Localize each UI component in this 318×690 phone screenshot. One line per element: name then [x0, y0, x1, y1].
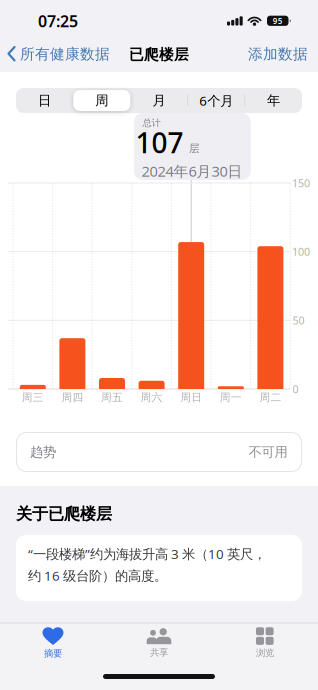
staticText: 约 16 级台阶）的高度。 [28, 567, 167, 584]
staticText: 周二 [259, 391, 281, 404]
button[interactable]: 日 [17, 88, 73, 113]
staticText: 浏览 [256, 647, 274, 659]
staticText: 所有健康数据 [20, 45, 110, 63]
button[interactable]: 年 [245, 88, 301, 113]
staticText: 周四 [61, 391, 83, 404]
button[interactable]: 所有健康数据 [7, 45, 110, 63]
staticText: 周日 [180, 391, 202, 404]
staticText: “一段楼梯”约为海拔升高 3 米（10 英尺， [28, 545, 266, 563]
staticText: 趋势 [30, 444, 56, 460]
staticText: 150 [292, 176, 310, 190]
button[interactable]: 摘要 [8, 622, 98, 664]
staticText: 100 [292, 245, 310, 259]
staticText: 95 [273, 16, 283, 26]
staticText: 0 [292, 382, 298, 396]
staticText: 总计 [142, 117, 160, 129]
staticText: 共享 [150, 647, 168, 658]
button[interactable]: 周 [74, 88, 130, 113]
button[interactable]: 浏览 [220, 622, 310, 664]
staticText: 月 [152, 92, 165, 109]
staticText: 层 [189, 142, 200, 155]
staticText: 周六 [141, 391, 163, 404]
staticText: 摘要 [44, 648, 62, 659]
staticText: 2024年6月30日 [141, 161, 242, 181]
staticText: 周五 [101, 391, 123, 404]
staticText: 日 [38, 92, 51, 109]
staticText: 50 [292, 313, 304, 327]
staticText: 周 [95, 92, 108, 109]
staticText: 添加数据 [248, 45, 308, 63]
staticText: 6个月 [199, 92, 233, 109]
staticText: 周一 [220, 391, 242, 404]
staticText: 07:25 [38, 10, 78, 32]
button[interactable]: 月 [131, 88, 187, 113]
staticText: 关于已爬楼层 [16, 504, 112, 524]
staticText: 107 [135, 124, 183, 161]
staticText: 不可用 [248, 444, 287, 460]
staticText: 已爬楼层 [129, 45, 189, 63]
staticText: 周三 [22, 391, 44, 404]
button[interactable]: 6个月 [188, 88, 244, 113]
button[interactable]: 添加数据 [248, 45, 308, 63]
button[interactable]: 共享 [114, 622, 204, 664]
staticText: 年 [267, 92, 280, 109]
